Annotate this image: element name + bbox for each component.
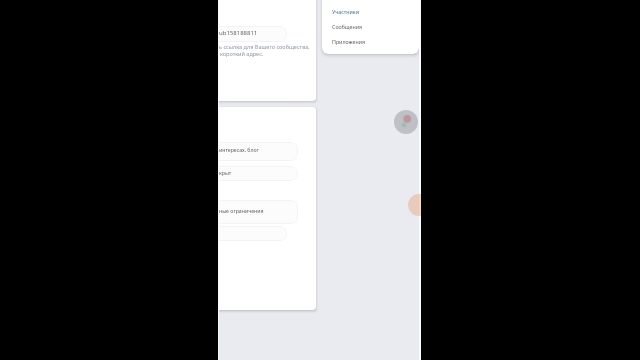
staticText: ные ограничения (219, 207, 264, 214)
staticText: Участники (332, 8, 359, 15)
staticText: Сообщения (332, 23, 363, 30)
button[interactable] (218, 226, 287, 241)
button[interactable]: Участники (322, 4, 419, 19)
staticText: короткий адрес. (220, 50, 264, 57)
staticText: ub158188811 (219, 29, 258, 37)
button[interactable]: Сообщения (322, 19, 419, 34)
button[interactable]: Action (408, 194, 421, 216)
staticText: Приложения (332, 38, 365, 45)
staticText: интересах, блог (219, 146, 259, 153)
staticText: ь ссылка для Вашего сообщества, (219, 43, 310, 50)
button[interactable] (218, 166, 298, 181)
button[interactable] (218, 26, 287, 42)
button[interactable]: Приложения (322, 34, 419, 49)
staticText: крыт (219, 169, 232, 176)
button[interactable] (218, 142, 298, 161)
button[interactable]: Avatar (394, 110, 418, 134)
button[interactable] (218, 200, 298, 224)
